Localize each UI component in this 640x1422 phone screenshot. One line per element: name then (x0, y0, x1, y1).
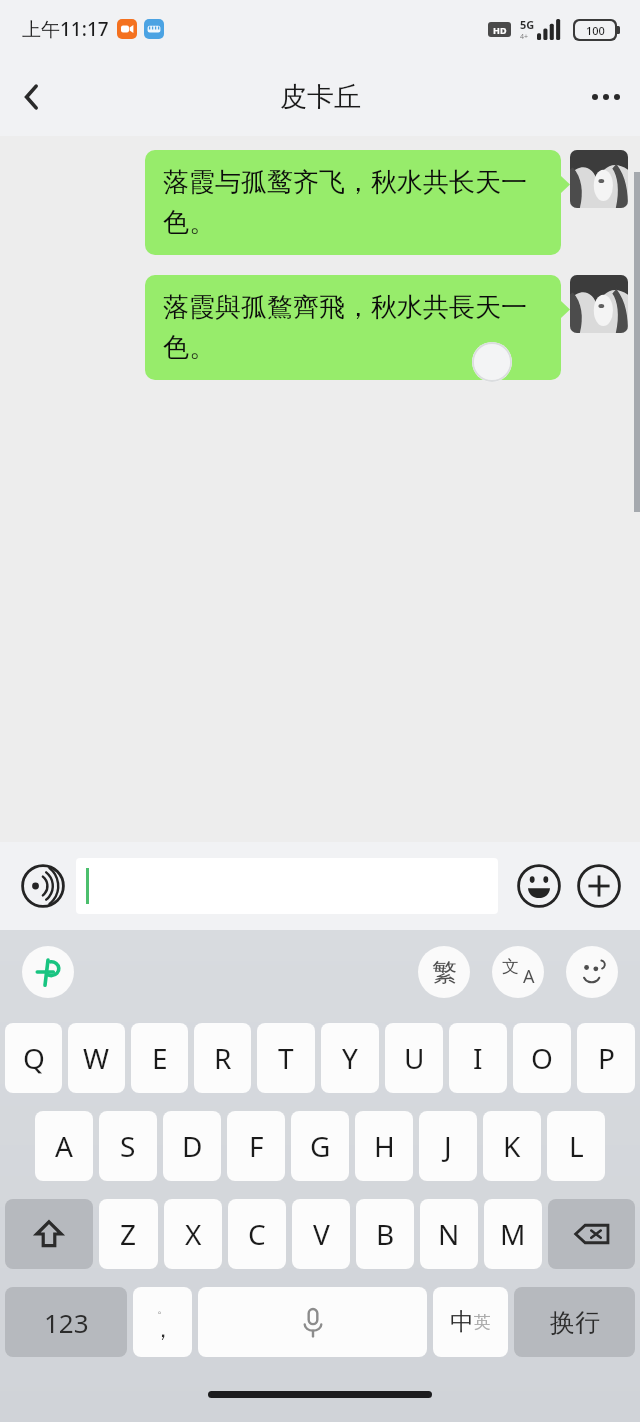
button[interactable]: L (547, 1111, 605, 1181)
button[interactable]: M (484, 1199, 542, 1269)
staticText: 5G (520, 17, 535, 32)
button[interactable]: R (194, 1023, 251, 1093)
button[interactable]: 繁 (418, 946, 470, 998)
button[interactable]: P (577, 1023, 635, 1093)
button[interactable]: Avatar (570, 275, 628, 333)
button[interactable]: U (385, 1023, 443, 1093)
button[interactable]: E (131, 1023, 188, 1093)
button[interactable]: Chinese English toggle (433, 1287, 508, 1357)
staticText: Z (120, 1215, 137, 1253)
staticText: M (500, 1215, 526, 1253)
button[interactable]: More options (572, 63, 640, 131)
staticText: K (503, 1127, 521, 1165)
button[interactable]: K (483, 1111, 541, 1181)
button[interactable]: A (35, 1111, 93, 1181)
staticText: 落霞与孤鹜齐飞，秋水共长天一色。 (163, 166, 543, 239)
button[interactable]: I (449, 1023, 507, 1093)
staticText: 皮卡丘 (280, 80, 361, 114)
button[interactable]: 换行 (514, 1287, 635, 1357)
staticText: B (376, 1215, 395, 1253)
staticText: 繁 (432, 957, 457, 988)
staticText: N (438, 1215, 460, 1253)
staticText: T (278, 1039, 294, 1077)
staticText: H (374, 1127, 395, 1165)
button[interactable]: O (513, 1023, 571, 1093)
button[interactable]: Back (0, 65, 64, 129)
staticText: Q (23, 1039, 45, 1077)
button[interactable]: X (164, 1199, 222, 1269)
staticText: ， (152, 1316, 174, 1344)
staticText: V (313, 1215, 330, 1253)
staticText: P (598, 1039, 615, 1077)
button[interactable]: S (99, 1111, 157, 1181)
button[interactable]: 落霞与孤鹜齐飞，秋水共长天一色。 (145, 150, 561, 255)
button[interactable]: H (355, 1111, 413, 1181)
staticText: HD (493, 24, 507, 36)
button[interactable]: W (68, 1023, 125, 1093)
staticText: G (310, 1127, 331, 1165)
staticText: 123 (44, 1305, 89, 1340)
button[interactable]: 落霞與孤鶩齊飛，秋水共長天一色。 (145, 275, 561, 380)
button[interactable]: F (227, 1111, 285, 1181)
button[interactable]: More functions (572, 859, 626, 913)
staticText: 中 (450, 1307, 474, 1337)
button[interactable]: Stickers (566, 946, 618, 998)
staticText: 4+ (520, 32, 529, 42)
staticText: 英 (474, 1312, 491, 1333)
button[interactable]: Translate (492, 946, 544, 998)
staticText: D (182, 1127, 203, 1165)
staticText: L (569, 1127, 584, 1165)
staticText: 落霞與孤鶩齊飛，秋水共長天一色。 (163, 291, 543, 364)
button[interactable]: Shift (5, 1199, 93, 1269)
staticText: S (120, 1127, 136, 1165)
button[interactable]: Space (198, 1287, 427, 1357)
staticText: I (473, 1039, 483, 1077)
staticText: U (404, 1039, 425, 1077)
button[interactable]: J (419, 1111, 477, 1181)
staticText: F (249, 1127, 264, 1165)
button[interactable]: B (356, 1199, 414, 1269)
staticText: 。 (157, 1301, 169, 1316)
button[interactable]: G (291, 1111, 349, 1181)
staticText: R (214, 1039, 232, 1077)
staticText: A (55, 1127, 73, 1165)
button[interactable]: Y (321, 1023, 379, 1093)
staticText: X (185, 1215, 202, 1253)
button[interactable]: 123 (5, 1287, 127, 1357)
button[interactable]: N (420, 1199, 478, 1269)
staticText: C (248, 1215, 266, 1253)
button[interactable]: Avatar (570, 150, 628, 208)
button[interactable]: D (163, 1111, 221, 1181)
staticText: O (531, 1039, 553, 1077)
button[interactable]: Punctuation (133, 1287, 192, 1357)
staticText: 文 (502, 956, 519, 977)
button[interactable]: Emoji (512, 859, 566, 913)
staticText: W (83, 1039, 110, 1077)
button[interactable]: Q (5, 1023, 62, 1093)
button[interactable]: T (257, 1023, 315, 1093)
button[interactable] (76, 858, 498, 914)
button[interactable]: Z (99, 1199, 158, 1269)
button[interactable]: Input method (22, 946, 74, 998)
button[interactable]: V (292, 1199, 350, 1269)
staticText: A (523, 964, 535, 989)
button[interactable]: Backspace (548, 1199, 635, 1269)
staticText: Y (342, 1039, 358, 1077)
staticText: 换行 (550, 1307, 600, 1338)
staticText: 上午11:17 (22, 16, 109, 42)
staticText: 100 (586, 23, 605, 38)
button[interactable]: C (228, 1199, 286, 1269)
staticText: E (152, 1039, 168, 1077)
button[interactable]: Voice input (14, 857, 72, 915)
staticText: J (444, 1127, 452, 1165)
